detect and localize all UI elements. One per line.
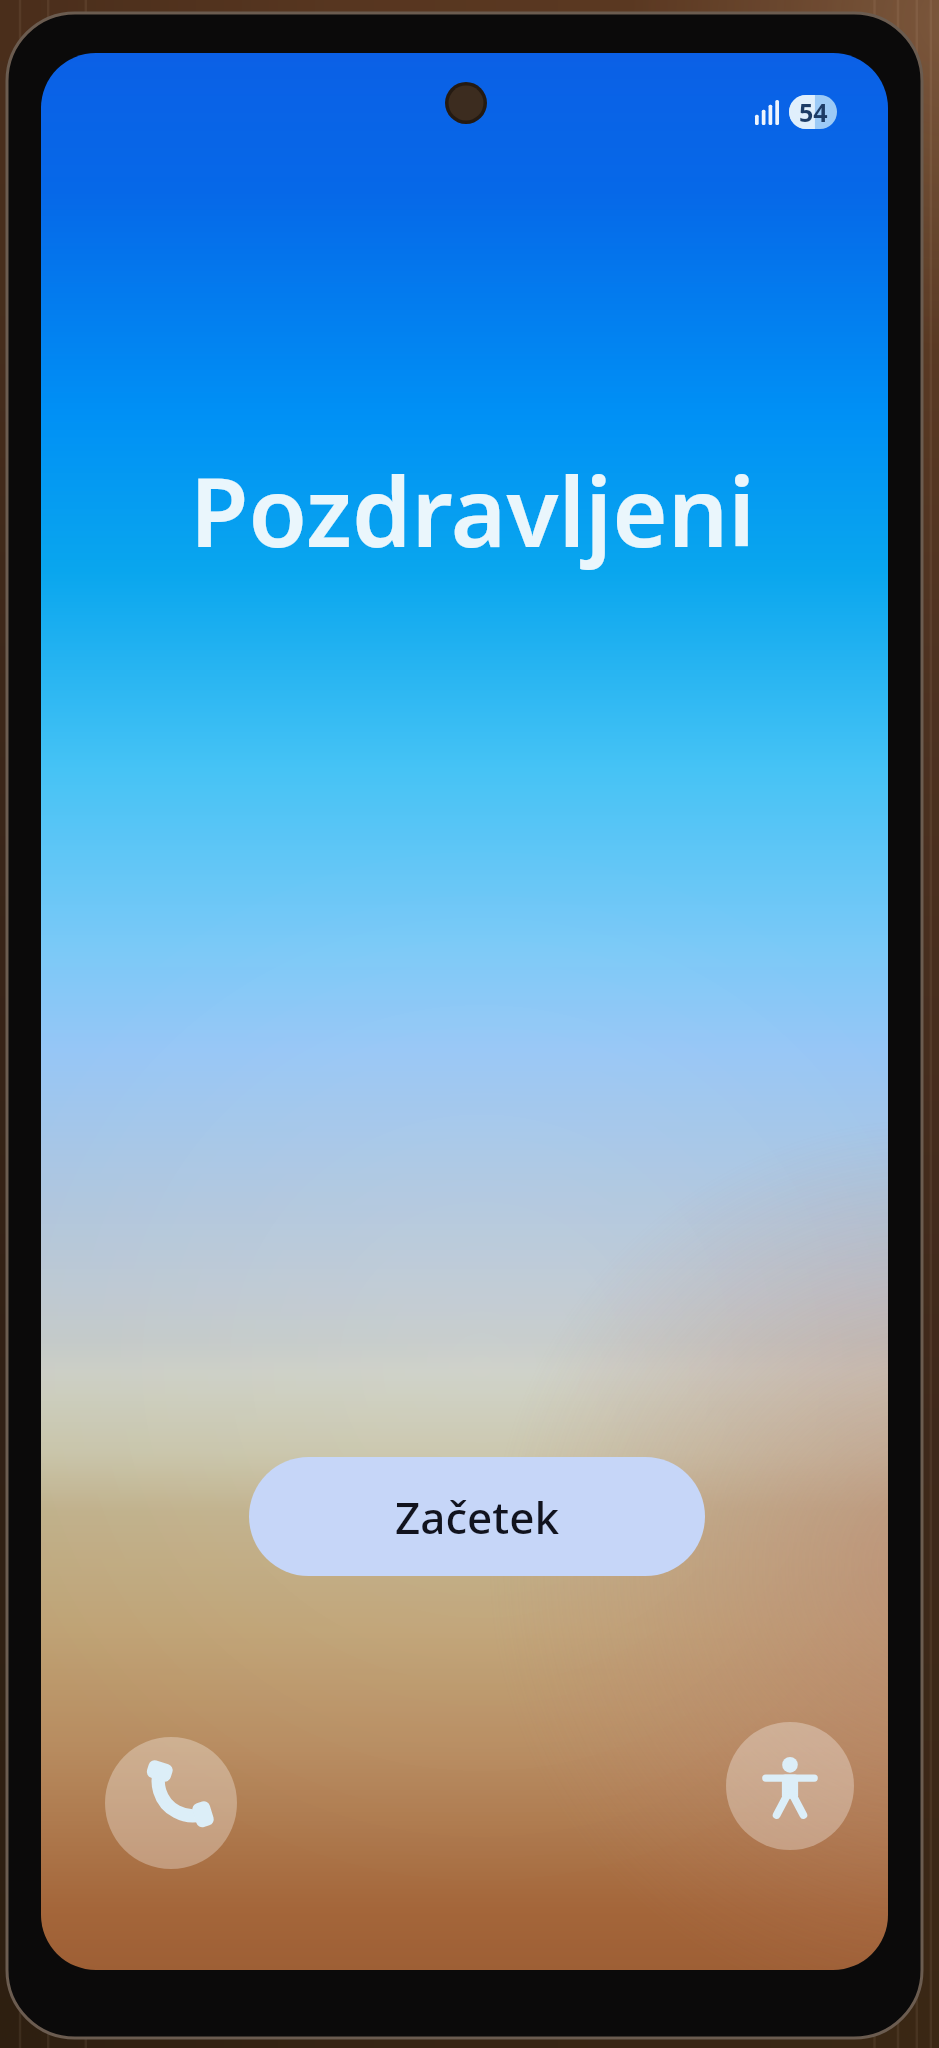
button[interactable]: Emergency call [105, 1737, 237, 1869]
staticText: Pozdravljeni [190, 445, 756, 574]
button[interactable]: Accessibility [726, 1722, 854, 1850]
button[interactable]: Začetek [249, 1457, 705, 1576]
staticText: 54 [799, 95, 828, 129]
staticText: Začetek [395, 1487, 559, 1547]
